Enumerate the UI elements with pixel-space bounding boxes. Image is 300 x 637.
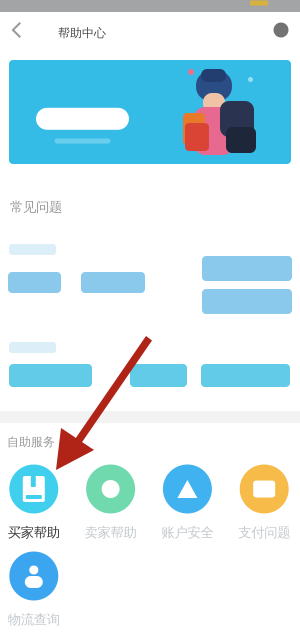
staticText: 支付问题 (238, 524, 290, 541)
button[interactable]: 物流查询 (0, 551, 72, 625)
button[interactable]: 支付问题 (226, 464, 300, 538)
staticText: 买家帮助 (8, 524, 60, 541)
button[interactable]: 账户安全 (149, 464, 226, 538)
staticText: 物流查询 (8, 611, 60, 628)
staticText: 自助服务 (7, 435, 55, 449)
button[interactable]: 买家帮助 (0, 464, 72, 538)
button[interactable]: 卖家帮助 (72, 464, 149, 538)
staticText: 卖家帮助 (85, 524, 137, 541)
button[interactable]: Back (2, 13, 32, 47)
staticText: 帮助中心 (58, 26, 106, 40)
button[interactable]: More options (264, 13, 298, 47)
staticText: 账户安全 (161, 524, 213, 541)
staticText: 常见问题 (10, 199, 62, 215)
